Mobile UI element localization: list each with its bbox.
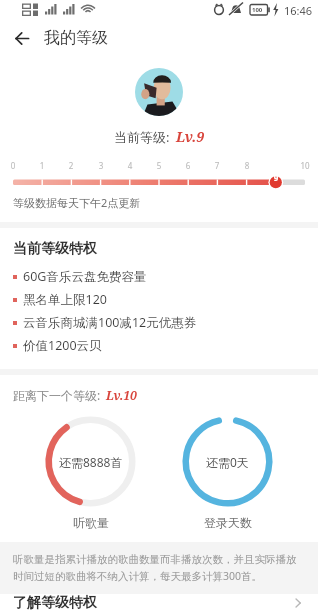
staticText: 16:46 — [284, 3, 313, 18]
staticText: 了解等级特权 — [13, 594, 97, 612]
staticText: 当前等级特权 — [13, 240, 97, 258]
staticText: 价值1200云贝 — [23, 337, 102, 354]
staticText: 7 — [212, 160, 222, 171]
staticText: 当前等级: — [114, 128, 170, 146]
staticText: Lv.10 — [106, 387, 137, 403]
staticText: Lv.9 — [176, 127, 205, 146]
staticText: 100 — [252, 6, 263, 14]
staticText: 9 — [271, 172, 281, 183]
staticText: 我的等级 — [44, 28, 108, 48]
button[interactable]: 返回 — [6, 22, 38, 54]
staticText: 0 — [8, 160, 18, 171]
staticText: 云音乐商城满100减12元优惠券 — [23, 314, 197, 331]
staticText: 60G音乐云盘免费容量 — [23, 268, 147, 285]
staticText: 听歌量 — [73, 515, 109, 530]
staticText: 2 — [66, 160, 76, 171]
staticText: 还需0天 — [206, 454, 249, 470]
staticText: 6 — [183, 160, 193, 171]
staticText: 听歌量是指累计播放的歌曲数量而非播放次数，并且实际播放时间过短的歌曲将不纳入计算… — [13, 553, 305, 583]
staticText: 10 — [300, 160, 310, 171]
staticText: 5 — [154, 160, 164, 171]
staticText: 等级数据每天下午2点更新 — [13, 195, 318, 210]
staticText: 1 — [37, 160, 47, 171]
staticText: 黑名单上限120 — [23, 291, 107, 308]
staticText: 还需8888首 — [59, 454, 123, 470]
staticText: 4 — [125, 160, 135, 171]
staticText: 8 — [242, 160, 252, 171]
staticText: 3 — [96, 160, 106, 171]
button[interactable]: 了解等级特权 — [0, 594, 318, 612]
staticText: 距离下一个等级: — [13, 387, 101, 403]
staticText: 登录天数 — [204, 515, 252, 530]
